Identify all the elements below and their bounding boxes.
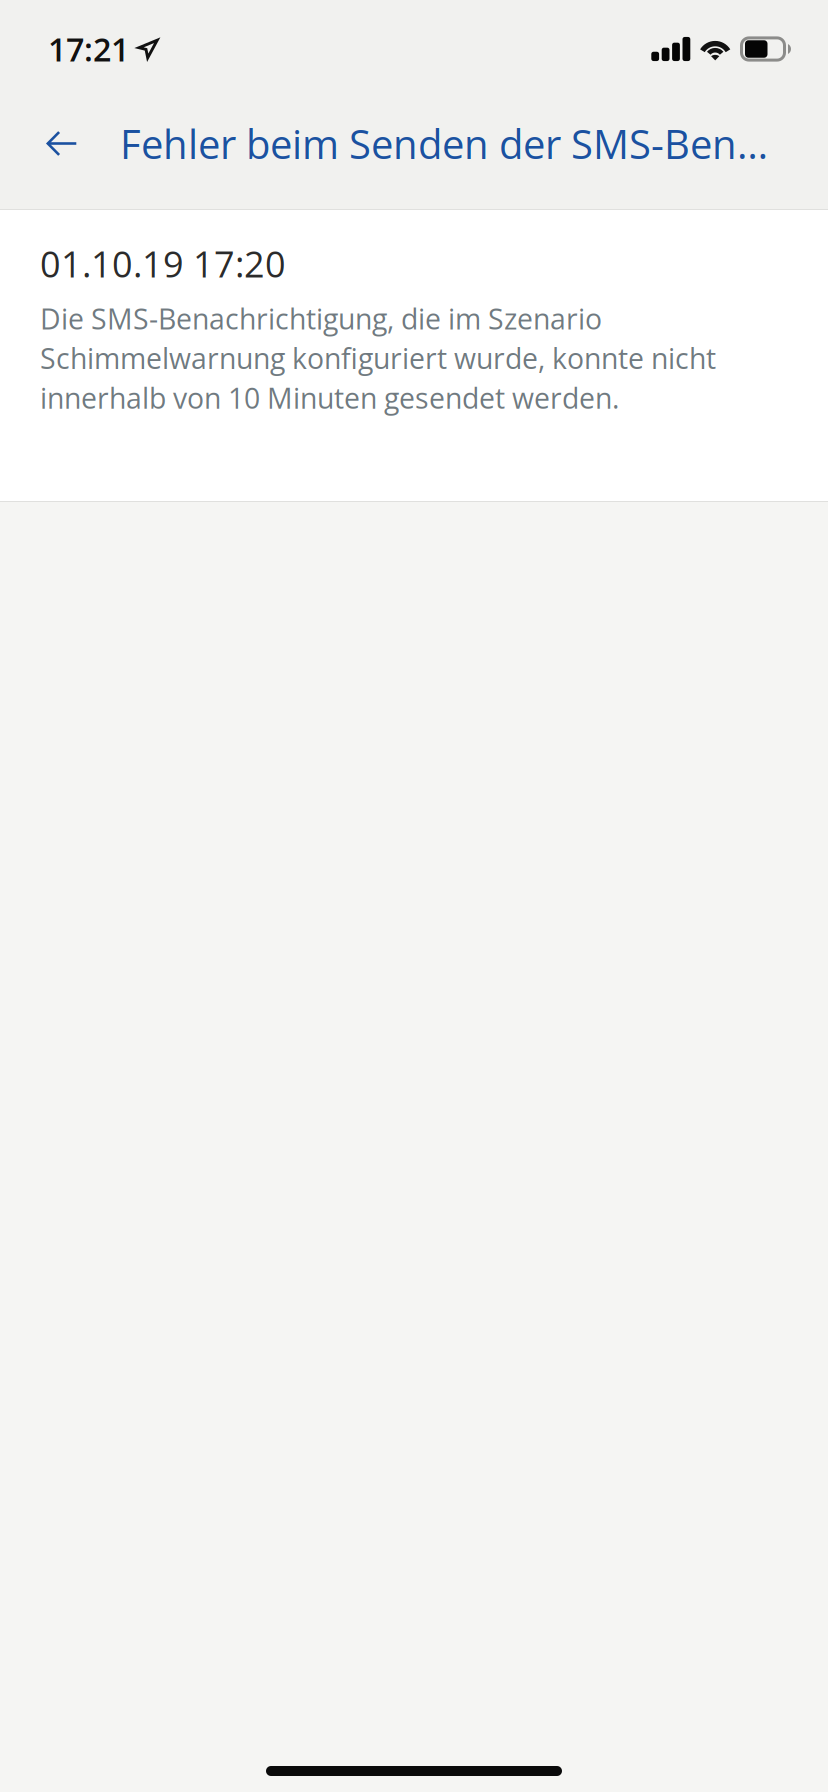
button[interactable]: Zurück: [23, 88, 101, 199]
staticText: Die SMS-Benachrichtigung, die im Szenari…: [40, 299, 716, 417]
staticText: 17:21: [48, 27, 129, 71]
staticText: Fehler beim Senden der SMS-Ben…: [120, 116, 768, 171]
staticText: 01.10.19 17:20: [40, 239, 286, 288]
